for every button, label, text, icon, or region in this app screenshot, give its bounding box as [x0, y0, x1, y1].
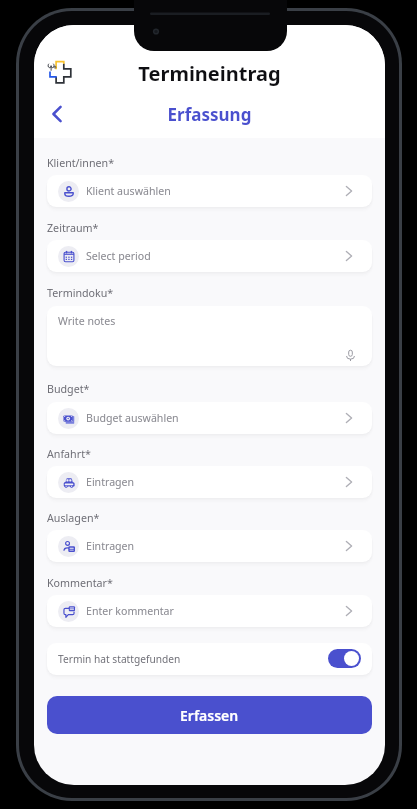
- staticText: Select period: [86, 249, 151, 263]
- staticText: Write notes: [58, 314, 116, 328]
- staticText: Termineintrag: [34, 60, 385, 87]
- button[interactable]: Erfassen: [47, 696, 372, 734]
- other: Termin hat stattgefunden: [328, 649, 361, 668]
- other: App logo: [42, 54, 82, 94]
- staticText: Erfassen: [180, 706, 239, 725]
- staticText: Erfassung: [34, 103, 385, 126]
- staticText: Zeitraum*: [47, 221, 99, 236]
- button[interactable]: Select period: [47, 240, 372, 272]
- staticText: Budget auswählen: [86, 411, 179, 425]
- other: Voice input: [346, 350, 355, 361]
- button[interactable]: Eintragen: [47, 466, 372, 498]
- staticText: Enter kommentar: [86, 604, 174, 618]
- staticText: Klient auswählen: [86, 184, 171, 198]
- button[interactable]: Enter kommentar: [47, 595, 372, 627]
- staticText: Termindoku*: [47, 286, 114, 301]
- staticText: Kommentar*: [47, 576, 113, 591]
- staticText: Budget*: [47, 382, 90, 397]
- staticText: Eintragen: [86, 475, 135, 489]
- staticText: Anfahrt*: [47, 447, 91, 462]
- staticText: Klient/innen*: [47, 156, 115, 171]
- staticText: Eintragen: [86, 539, 135, 553]
- button[interactable]: Write notes: [47, 306, 372, 366]
- button[interactable]: Eintragen: [47, 530, 372, 562]
- staticText: Termin hat stattgefunden: [58, 652, 181, 666]
- button[interactable]: Budget auswählen: [47, 402, 372, 434]
- button[interactable]: Termin hat stattgefunden: [47, 643, 372, 675]
- button[interactable]: Klient auswählen: [47, 175, 372, 207]
- button[interactable]: Back: [41, 98, 73, 130]
- staticText: Auslagen*: [47, 511, 100, 526]
